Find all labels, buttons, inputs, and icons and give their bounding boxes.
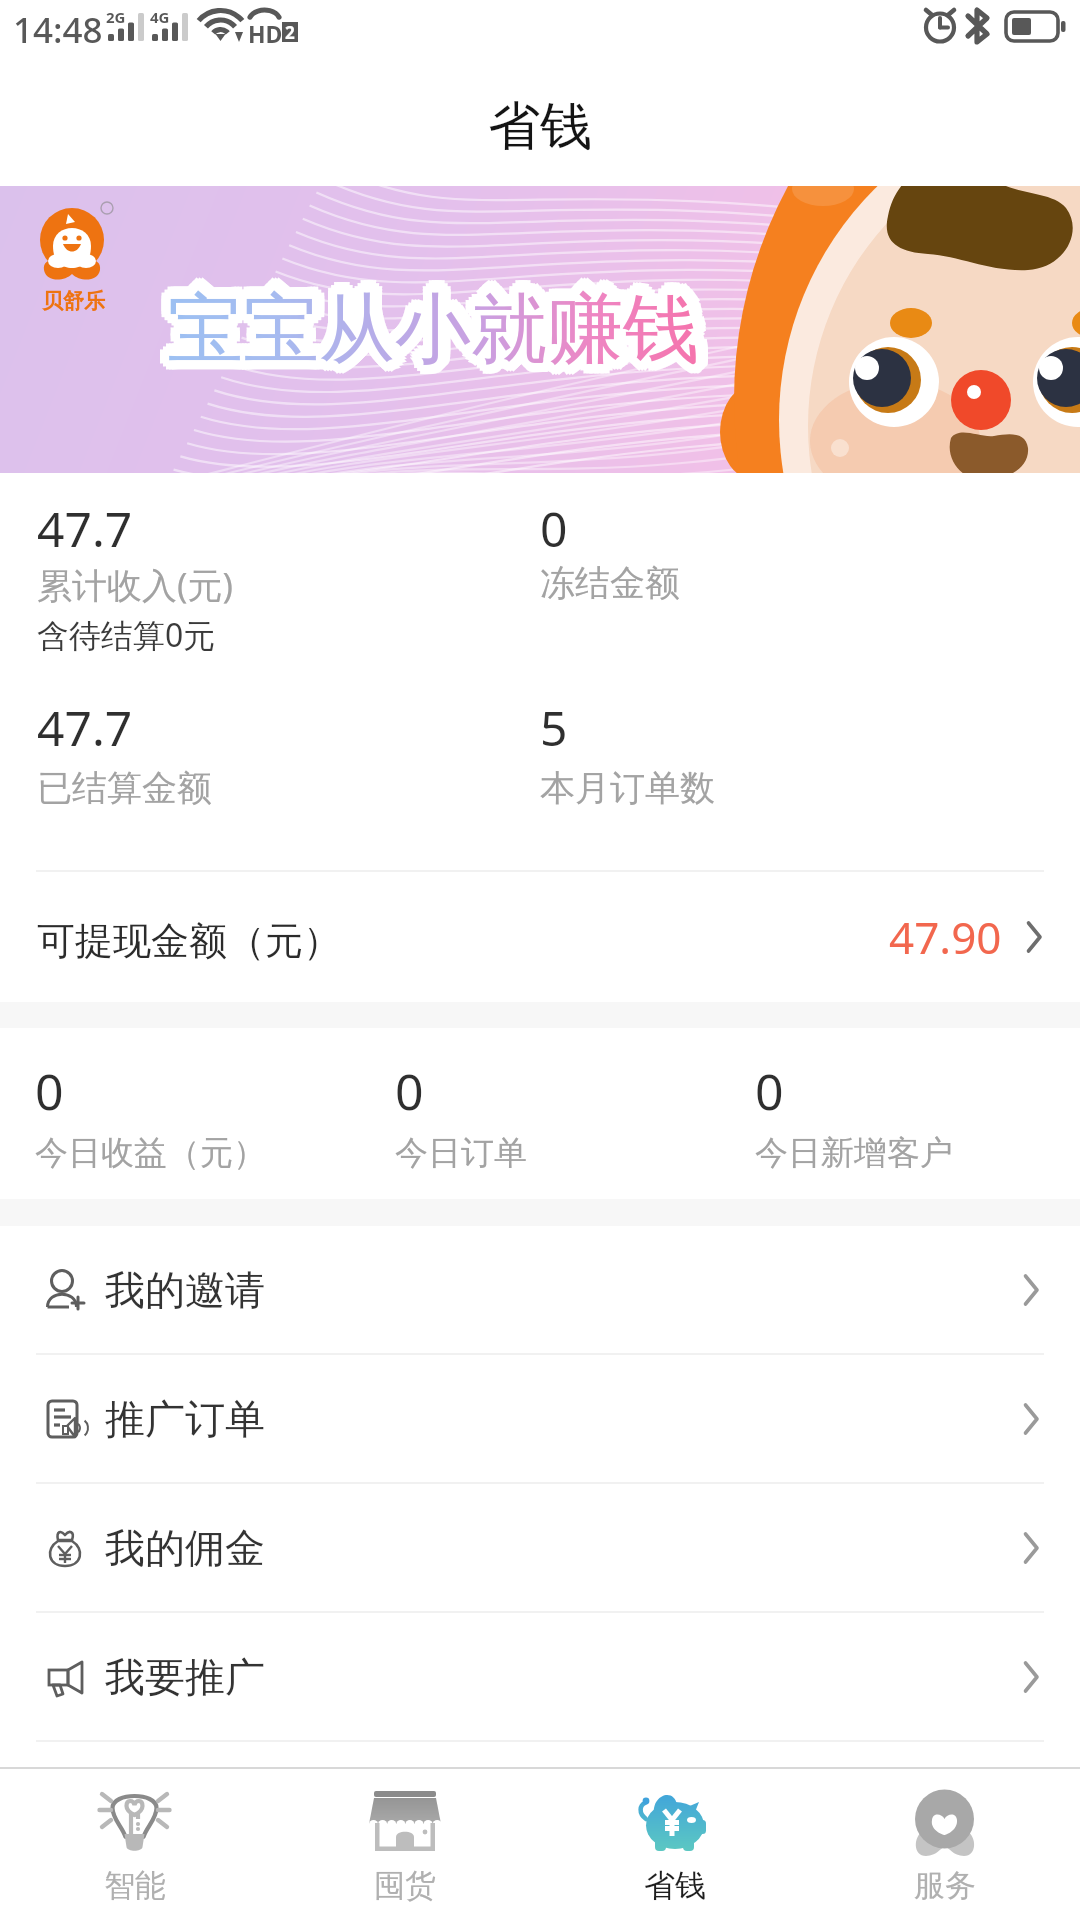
button[interactable]: 我要推广 [0,1613,1080,1740]
staticText: 宝宝从小就赚钱 [173,285,705,381]
staticText: 宝宝从小就赚钱 [167,279,699,375]
button[interactable]: 宝宝从小就赚钱 促销横幅 [0,186,1080,473]
staticText: 5 [540,695,568,760]
staticText: 已结算金额 [37,766,212,810]
staticText: 可提现金额（元） [37,917,341,965]
staticText: 我的佣金 [105,1523,265,1573]
staticText: 囤货 [374,1866,436,1905]
staticText: 今日订单 [395,1132,527,1174]
staticText: 宝宝从小就赚钱 [164,276,696,372]
staticText: 宝宝从小就赚钱 [164,273,696,369]
staticText: 宝宝从小就赚钱 [164,282,696,378]
staticText: 智能 [104,1866,166,1905]
staticText: 47.7 [37,496,133,561]
button[interactable]: 我的邀请 [0,1226,1080,1353]
staticText: 宝宝从小就赚钱 [161,282,693,378]
staticText: 0 [540,496,568,561]
staticText: 宝宝从小就赚钱 [176,282,708,378]
staticText: 宝宝从小就赚钱 [170,276,702,372]
staticText: 宝宝从小就赚钱 [170,285,702,381]
staticText: 47.7 [37,695,133,760]
staticText: 宝宝从小就赚钱 [158,285,690,381]
button[interactable]: 我的佣金 [0,1484,1080,1611]
staticText: 宝宝从小就赚钱 [161,288,693,384]
button[interactable]: 智能 [0,1769,270,1920]
staticText: 我要推广 [105,1652,265,1702]
staticText: 0 [395,1057,424,1125]
staticText: 宝宝从小就赚钱 [173,279,705,375]
staticText: 宝宝从小就赚钱 [167,288,699,384]
staticText: 贝舒乐 [42,288,105,314]
staticText: 宝宝从小就赚钱 [170,291,702,387]
staticText: 宝宝从小就赚钱 [164,279,696,375]
staticText: 14:48 [13,6,103,54]
staticText: 宝宝从小就赚钱 [173,276,705,372]
staticText: 今日收益（元） [35,1132,266,1174]
staticText: 宝宝从小就赚钱 [158,279,690,375]
staticText: 宝宝从小就赚钱 [167,291,699,387]
staticText: 我的邀请 [105,1265,265,1315]
staticText: 宝宝从小就赚钱 [170,282,702,378]
staticText: 宝宝从小就赚钱 [173,282,705,378]
staticText: 宝宝从小就赚钱 [167,282,699,378]
staticText: 宝宝从小就赚钱 [167,285,699,381]
staticText: 0 [755,1057,784,1125]
staticText: 服务 [914,1866,976,1905]
staticText: 宝宝从小就赚钱 [170,279,702,375]
staticText: 2 [285,21,295,41]
staticText: 宝宝从小就赚钱 [170,273,702,369]
button[interactable]: 囤货 [270,1769,540,1920]
button[interactable]: 服务 [810,1769,1080,1920]
staticText: 宝宝从小就赚钱 [167,273,699,369]
staticText: 宝宝从小就赚钱 [161,285,693,381]
staticText: 4G [150,7,170,27]
staticText: 推广订单 [105,1394,265,1444]
staticText: 47.90 [889,907,1002,967]
button[interactable]: 推广订单 [0,1355,1080,1482]
staticText: 含待结算0元 [37,613,216,657]
staticText: 宝宝从小就赚钱 [161,279,693,375]
staticText: 宝宝从小就赚钱 [167,276,699,372]
staticText: 宝宝从小就赚钱 [164,285,696,381]
staticText: 冻结金额 [540,561,680,605]
staticText: 今日新增客户 [755,1132,953,1174]
button[interactable]: 省钱 [540,1769,810,1920]
staticText: 宝宝从小就赚钱 [158,282,690,378]
staticText: 宝宝从小就赚钱 [173,288,705,384]
button[interactable]: 可提现金额（元） [0,872,1080,1002]
staticText: HD [248,18,283,49]
staticText: 宝宝从小就赚钱 [164,291,696,387]
staticText: 宝宝从小就赚钱 [167,282,699,378]
staticText: 累计收入(元) [37,561,234,609]
staticText: 宝宝从小就赚钱 [176,279,708,375]
staticText: 0 [35,1057,64,1125]
staticText: 宝宝从小就赚钱 [164,288,696,384]
staticText: 2G [106,7,126,27]
staticText: 宝宝从小就赚钱 [170,288,702,384]
staticText: 省钱 [488,94,592,160]
staticText: 本月订单数 [540,766,715,810]
staticText: 宝宝从小就赚钱 [176,285,708,381]
staticText: 宝宝从小就赚钱 [161,276,693,372]
staticText: 省钱 [644,1866,706,1905]
